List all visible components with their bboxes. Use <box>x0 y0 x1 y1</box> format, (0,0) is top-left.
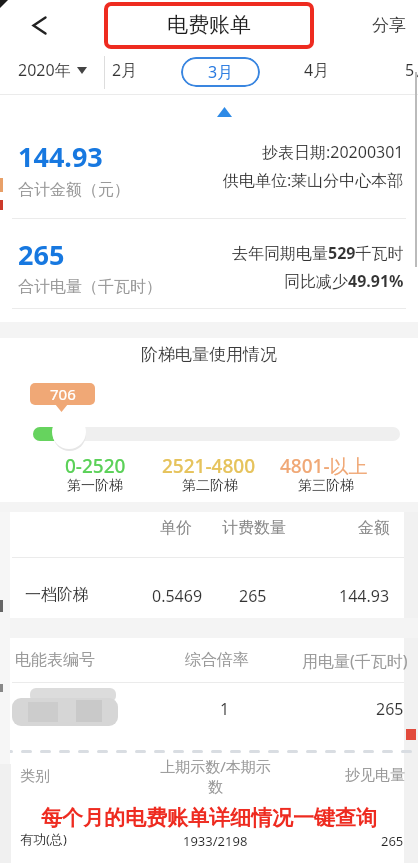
staticText: 上期示数/本期示 数 <box>160 756 271 797</box>
staticText: 阶梯电量使用情况 <box>141 344 277 365</box>
staticText: 0-2520 <box>65 453 126 479</box>
button[interactable] <box>24 10 54 40</box>
staticText: 合计电量（千瓦时） <box>18 277 162 297</box>
staticText: 第二阶梯 <box>182 477 238 495</box>
staticText: 0.5469 <box>152 585 203 607</box>
staticText: 同比减少49.91% <box>284 270 404 292</box>
staticText: 用电量(千瓦时) <box>302 650 408 672</box>
staticText: 4801-以上 <box>280 453 368 479</box>
staticText: 5月 <box>405 59 418 81</box>
staticText: 第三阶梯 <box>298 477 354 495</box>
staticText: 265 <box>376 698 404 720</box>
staticText: 单价 <box>160 518 192 538</box>
staticText: 去年同期电量529千瓦时 <box>232 242 404 264</box>
button[interactable]: 分享 <box>372 15 406 36</box>
button[interactable]: 2020年 <box>18 50 87 90</box>
staticText: 4月 <box>304 59 330 81</box>
staticText: 分享 <box>372 15 406 36</box>
staticText: 265 <box>239 585 267 607</box>
staticText: 每个月的电费账单详细情况一键查询 <box>41 805 377 831</box>
staticText: 综合倍率 <box>185 650 249 670</box>
staticText: 2月 <box>112 59 138 81</box>
button[interactable]: 3月 <box>181 57 260 87</box>
staticText: 1933/2198 <box>183 832 248 850</box>
staticText: 1 <box>220 698 230 720</box>
staticText: 金额 <box>358 518 390 538</box>
staticText: 电费账单 <box>167 12 251 38</box>
staticText: 抄见电量 <box>345 766 405 785</box>
staticText: 抄表日期:20200301 <box>262 141 404 163</box>
button[interactable]: 2月 <box>105 50 145 90</box>
staticText: 计费数量 <box>222 518 286 538</box>
staticText: 一档阶梯 <box>25 585 89 605</box>
staticText: 265 <box>381 832 404 850</box>
staticText: 第一阶梯 <box>67 477 123 495</box>
staticText: 类别 <box>20 767 50 786</box>
staticText: 2521-4800 <box>162 453 256 479</box>
staticText: 合计金额（元） <box>18 180 130 200</box>
staticText: 电能表编号 <box>15 650 95 670</box>
button[interactable]: 4月 <box>297 50 337 90</box>
staticText: 2020年 <box>18 59 71 81</box>
staticText: 有功(总) <box>20 830 67 848</box>
staticText: 3月 <box>208 61 234 83</box>
staticText: 供电单位:莱山分中心本部 <box>223 169 404 191</box>
staticText: 144.93 <box>339 585 390 607</box>
staticText: 265 <box>18 236 65 273</box>
button[interactable] <box>52 415 86 449</box>
staticText: 706 <box>50 384 76 404</box>
staticText: 144.93 <box>18 138 103 175</box>
